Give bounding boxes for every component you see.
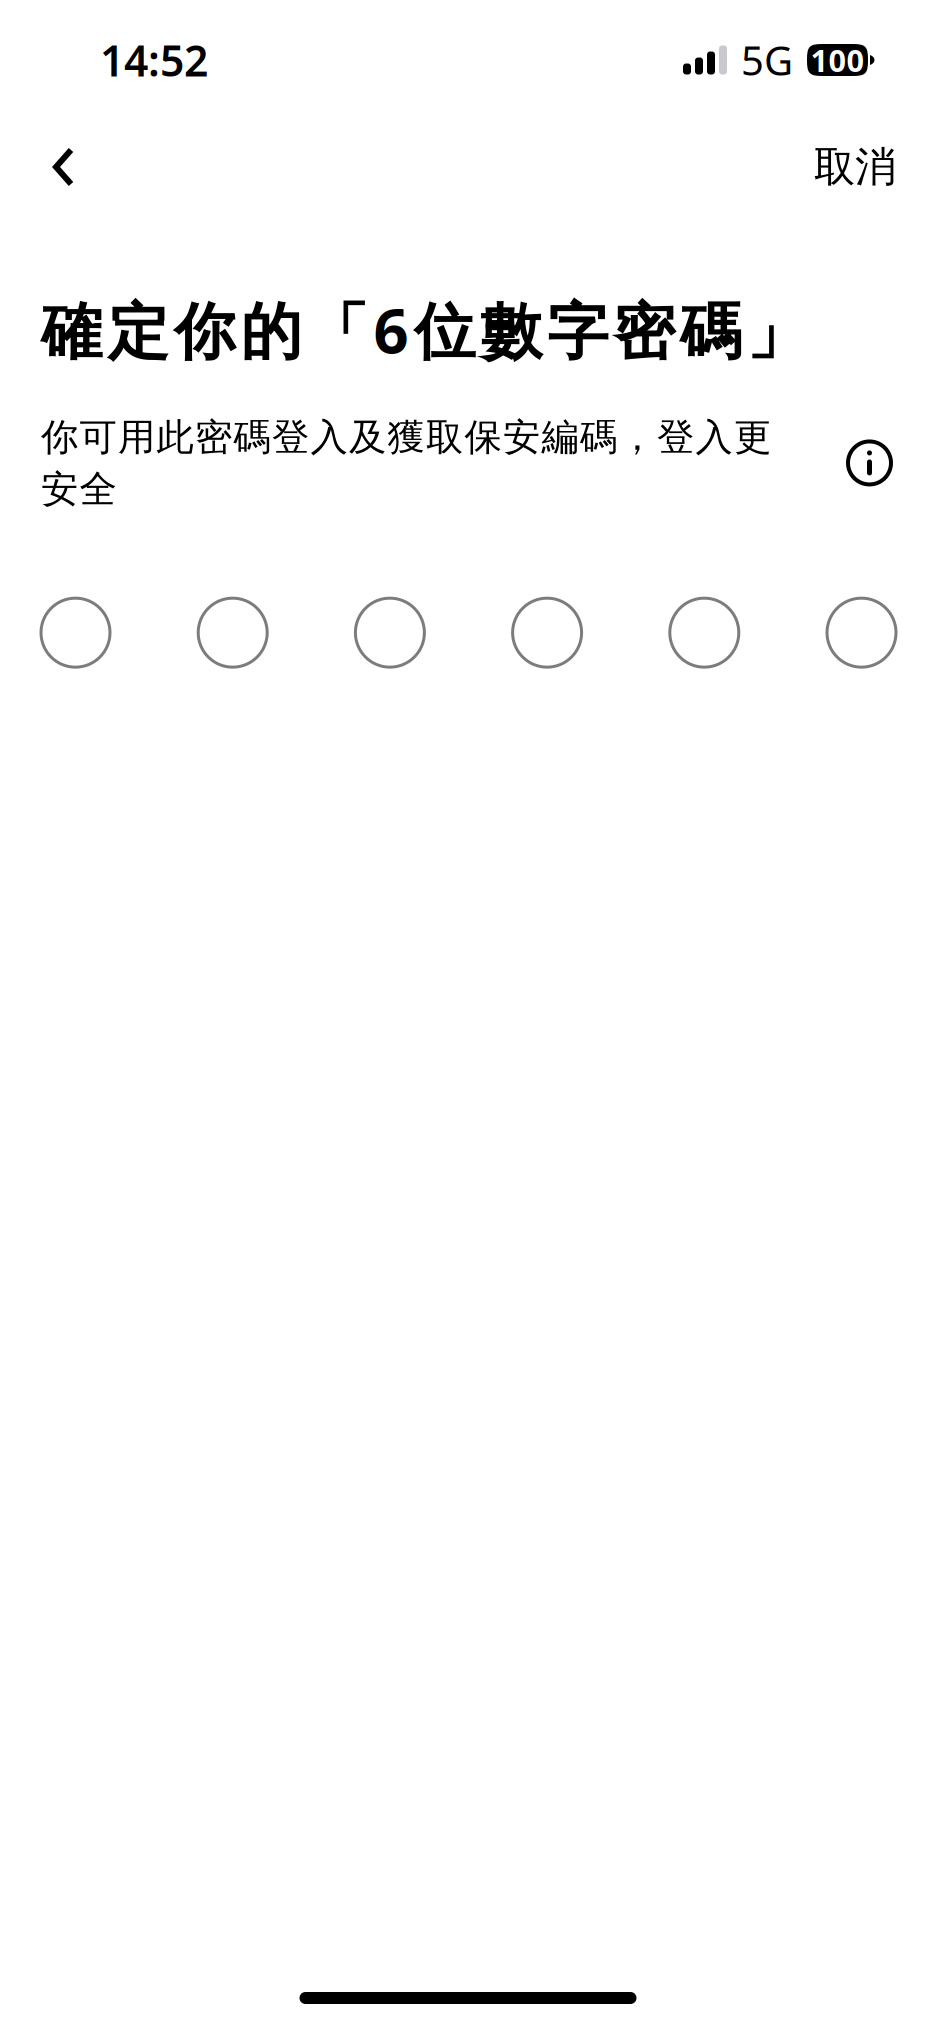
staticText: 100 — [810, 40, 864, 80]
button[interactable]: 取消 — [814, 123, 896, 211]
button[interactable]: 6-digit passcode entry — [41, 598, 896, 667]
button[interactable]: Back — [28, 123, 100, 211]
button[interactable]: More information — [846, 414, 898, 486]
staticText: 你可用此密碼登入及獲取保安編碼，登入更安全 — [41, 414, 771, 512]
staticText: 5G — [741, 33, 793, 86]
staticText: 取消 — [814, 142, 896, 192]
staticText: 確定你的「6位數字密碼」 — [41, 289, 807, 370]
staticText: 14:52 — [100, 32, 208, 88]
